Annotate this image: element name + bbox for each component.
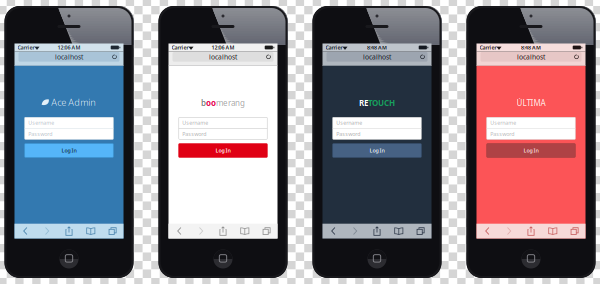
staticText: RE bbox=[359, 98, 368, 108]
button[interactable]: Back bbox=[322, 224, 344, 238]
staticText: Password bbox=[182, 130, 206, 137]
button[interactable]: Tabs bbox=[102, 224, 123, 238]
staticText: Username bbox=[28, 119, 54, 126]
staticText: Carrier bbox=[479, 44, 496, 51]
button[interactable]: Log In bbox=[487, 144, 575, 157]
staticText: Password bbox=[28, 130, 52, 137]
staticText: Username bbox=[490, 119, 516, 126]
button[interactable]: Back bbox=[14, 224, 36, 238]
staticText: Username bbox=[336, 119, 362, 126]
staticText: oo bbox=[206, 98, 216, 108]
button[interactable]: Tabs bbox=[564, 224, 585, 238]
button[interactable]: Bookmarks bbox=[388, 224, 410, 238]
button[interactable]: Tabs bbox=[256, 224, 277, 238]
staticText: 8:48 AM bbox=[521, 44, 541, 51]
staticText: Carrier bbox=[171, 44, 188, 51]
button[interactable]: localhost bbox=[326, 52, 427, 62]
staticText: localhost bbox=[363, 52, 391, 61]
staticText: Log In bbox=[369, 147, 384, 154]
button[interactable]: localhost bbox=[172, 52, 273, 62]
button[interactable]: localhost bbox=[480, 52, 581, 62]
staticText: Ace Admin bbox=[51, 96, 96, 108]
button[interactable]: Forward bbox=[36, 224, 58, 238]
button[interactable]: localhost bbox=[18, 52, 119, 62]
button[interactable]: Share bbox=[212, 224, 234, 238]
staticText: Log In bbox=[523, 147, 538, 154]
staticText: b bbox=[201, 98, 206, 108]
staticText: merang bbox=[216, 98, 245, 108]
button[interactable]: Bookmarks bbox=[80, 224, 102, 238]
staticText: 8:48 AM bbox=[367, 44, 387, 51]
staticText: Password bbox=[490, 130, 514, 137]
button[interactable]: Share bbox=[366, 224, 388, 238]
button[interactable]: Forward bbox=[190, 224, 212, 238]
staticText: Username bbox=[182, 119, 208, 126]
staticText: TOUCH bbox=[368, 98, 395, 108]
staticText: localhost bbox=[517, 52, 545, 61]
staticText: localhost bbox=[55, 52, 83, 61]
button[interactable]: Forward bbox=[344, 224, 366, 238]
button[interactable]: Bookmarks bbox=[542, 224, 564, 238]
button[interactable]: Bookmarks bbox=[234, 224, 256, 238]
staticText: Log In bbox=[61, 147, 76, 154]
button[interactable]: Tabs bbox=[410, 224, 431, 238]
staticText: 12:06 AM bbox=[211, 44, 234, 51]
staticText: Carrier bbox=[17, 44, 34, 51]
button[interactable]: Back bbox=[476, 224, 498, 238]
button[interactable]: Log In bbox=[179, 144, 267, 157]
button[interactable]: Forward bbox=[498, 224, 520, 238]
staticText: Password bbox=[336, 130, 360, 137]
staticText: localhost bbox=[209, 52, 237, 61]
staticText: Carrier bbox=[325, 44, 342, 51]
button[interactable]: Log In bbox=[25, 144, 113, 157]
button[interactable]: Back bbox=[168, 224, 190, 238]
staticText: 12:06 AM bbox=[57, 44, 80, 51]
staticText: Log In bbox=[215, 147, 230, 154]
staticText: ÚLTIMA bbox=[516, 98, 545, 108]
button[interactable]: Log In bbox=[333, 144, 421, 157]
button[interactable]: Share bbox=[520, 224, 542, 238]
button[interactable]: Share bbox=[58, 224, 80, 238]
